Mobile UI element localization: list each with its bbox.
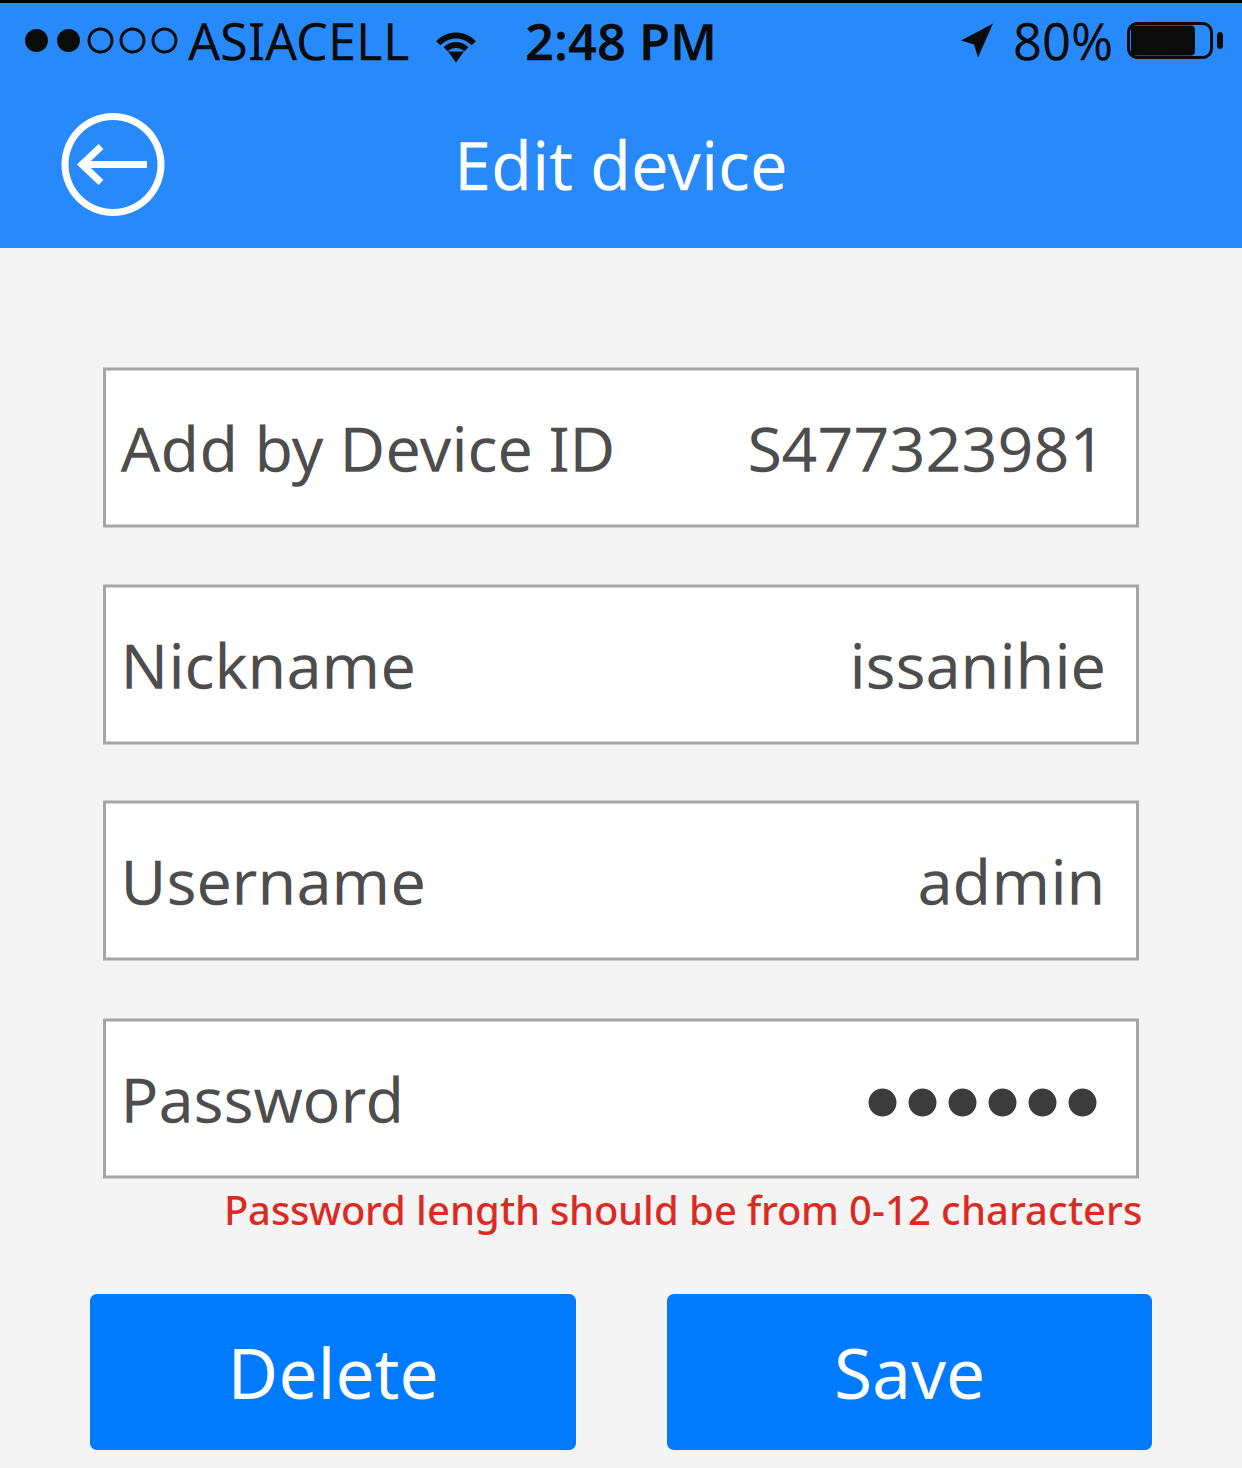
button[interactable]: Nickname [104, 586, 1137, 743]
staticText: S477323981 [747, 406, 1105, 489]
button[interactable]: Delete [90, 1294, 576, 1450]
staticText: Add by Device ID [120, 406, 615, 489]
staticText: admin [917, 839, 1105, 922]
staticText: Delete [227, 1326, 438, 1418]
staticText: Username [120, 839, 425, 922]
staticText: Edit device [454, 120, 788, 209]
button[interactable]: Add by Device ID [104, 369, 1137, 526]
staticText: 2:48 PM [525, 7, 717, 74]
button[interactable]: Username [104, 802, 1137, 959]
staticText: Password [120, 1057, 404, 1140]
staticText: Save [834, 1326, 985, 1418]
staticText: ASIACELL [188, 7, 410, 74]
button[interactable]: Password [104, 1020, 1137, 1177]
button[interactable]: Back [38, 89, 188, 239]
staticText: Password length should be from 0-12 char… [224, 1183, 1142, 1236]
staticText: issanihie [849, 623, 1105, 706]
staticText: 80% [1013, 7, 1113, 74]
staticText: Nickname [120, 623, 415, 706]
button[interactable]: Save [667, 1294, 1152, 1450]
